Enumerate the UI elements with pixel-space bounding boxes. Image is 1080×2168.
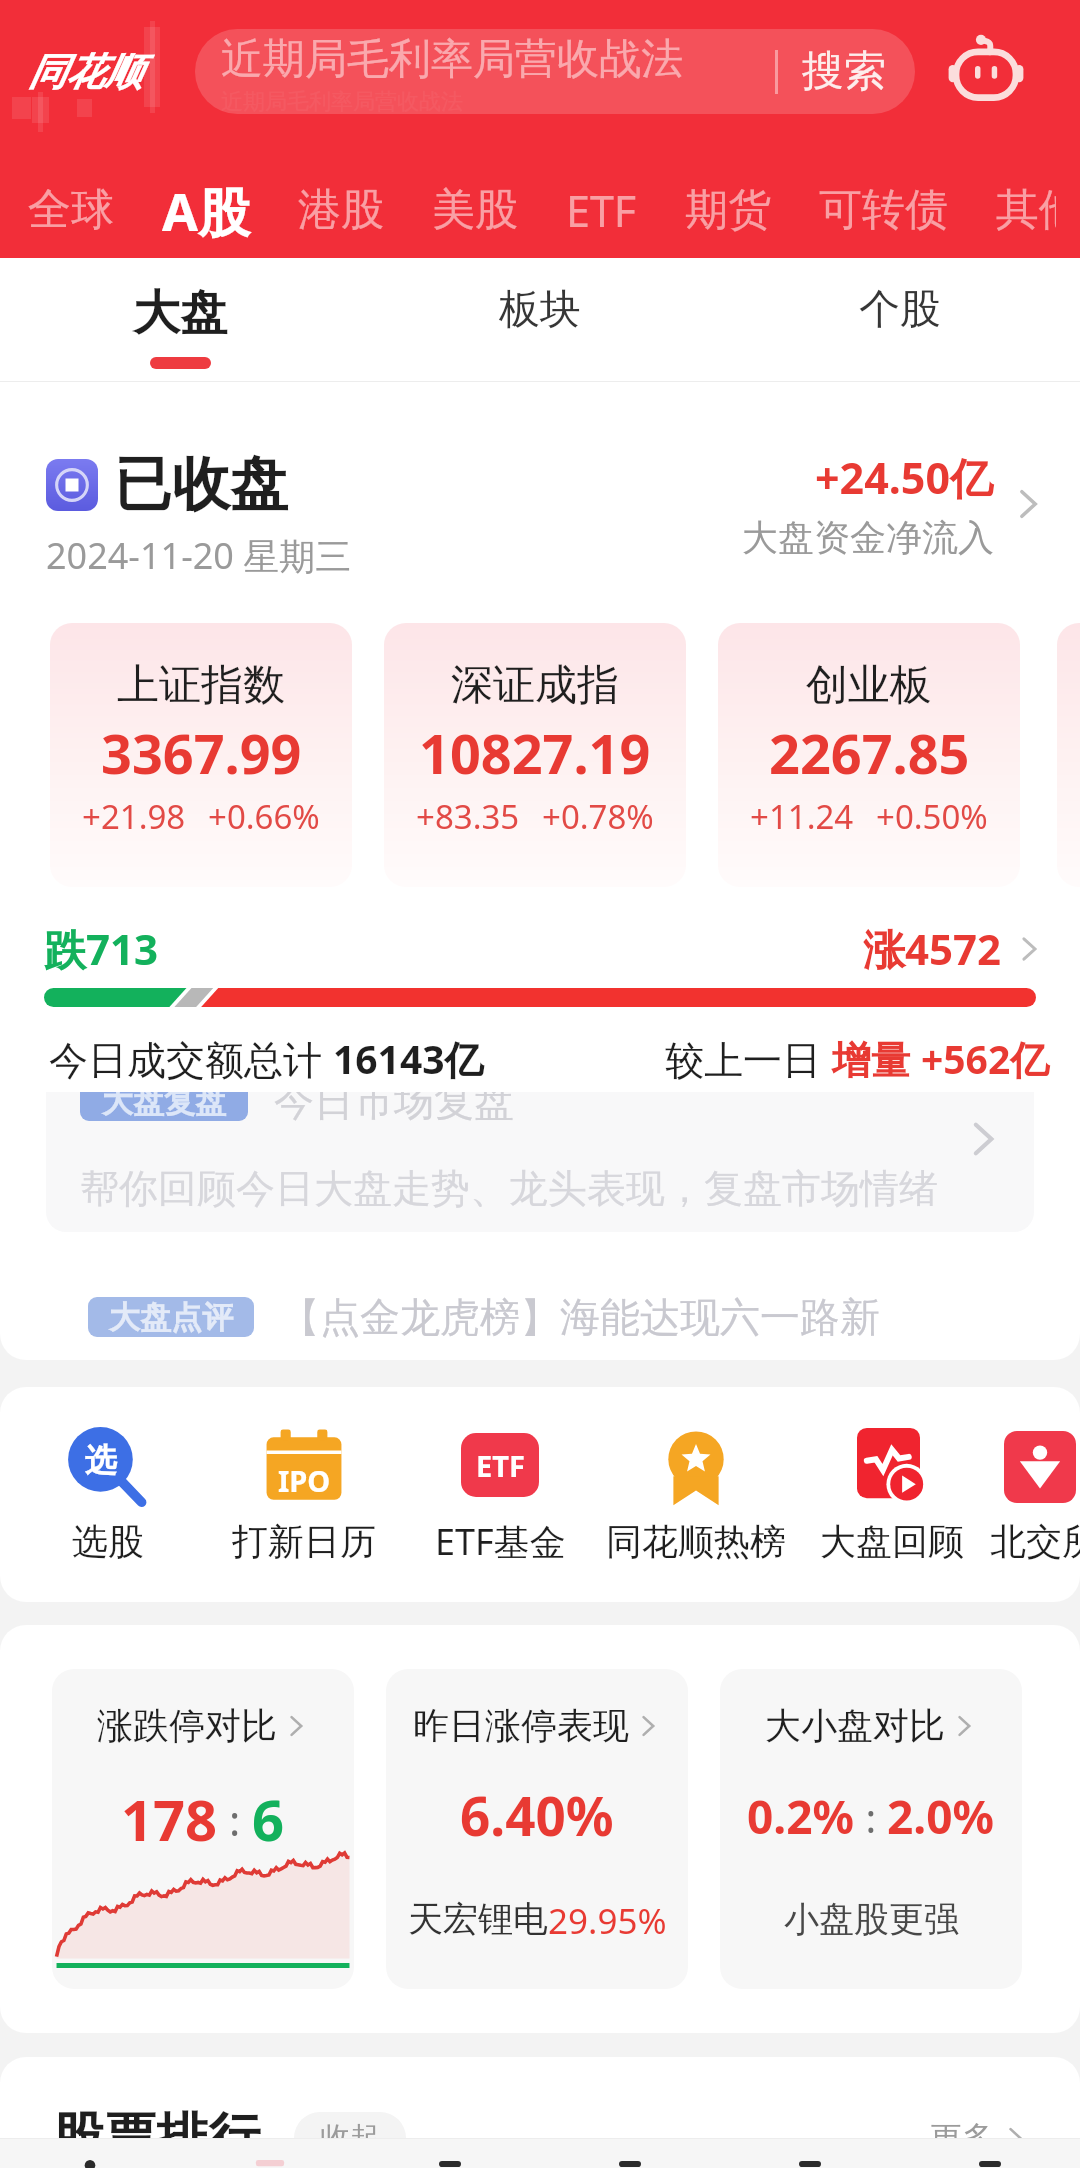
staticText: 2267.85	[769, 716, 970, 790]
staticText: 已收盘	[114, 448, 288, 521]
staticText: 大盘点评	[109, 1298, 233, 1337]
button[interactable]: 收起	[294, 2112, 406, 2138]
staticText: 今日成交额总计	[49, 1032, 333, 1085]
staticText: 【点金龙虎榜】海能达现六一路新	[280, 1292, 880, 1342]
staticText: 板块	[499, 284, 581, 336]
staticText: 2024-11-20 星期三	[46, 531, 352, 580]
staticText: +21.98	[82, 794, 186, 839]
staticText: 29.95%	[548, 1897, 667, 1945]
staticText: 选	[85, 1440, 117, 1480]
staticText: 深证成指	[451, 659, 619, 712]
staticText: 涨跌停对比	[97, 1703, 277, 1748]
staticText: 较上一日	[665, 1032, 832, 1085]
staticText: 大盘回顾	[820, 1519, 964, 1564]
staticText: 上证指数	[117, 659, 285, 712]
staticText: 增量	[832, 1032, 921, 1085]
staticText: 6	[252, 1781, 285, 1857]
button[interactable]	[1057, 623, 1080, 887]
staticText: 0.2%	[747, 1785, 855, 1848]
staticText: 更多	[930, 2118, 994, 2138]
staticText: 近期局毛利率局营收战法	[221, 33, 683, 86]
staticText: ETF基金	[435, 1517, 566, 1566]
button[interactable]: 自选	[180, 2160, 360, 2168]
staticText: 可转债	[819, 183, 948, 237]
staticText: 港股	[298, 183, 384, 237]
button[interactable]: 北交所	[990, 1425, 1080, 1564]
button[interactable]: 深证成指	[384, 623, 686, 887]
button[interactable]: 全球	[4, 175, 138, 245]
button[interactable]: 昨日涨停表现	[386, 1669, 688, 1989]
staticText: 16143亿	[333, 1032, 484, 1085]
staticText: 股票排行	[52, 2105, 260, 2138]
button[interactable]: 近期局毛利率局营收战法	[195, 29, 915, 114]
staticText: 大小盘对比	[765, 1703, 945, 1748]
button[interactable]: 同花顺热榜	[598, 1425, 794, 1564]
button[interactable]: 涨跌停对比	[52, 1669, 354, 1989]
staticText: 同花顺	[28, 48, 142, 96]
staticText: 天宏锂电	[408, 1897, 548, 1941]
staticText: 大盘资金净流入	[742, 515, 994, 560]
staticText: 10827.19	[419, 716, 651, 790]
button[interactable]: 创业板	[718, 623, 1020, 887]
button[interactable]: 选	[10, 1425, 206, 1564]
staticText: 搜索	[802, 45, 886, 98]
staticText: IPO	[278, 1461, 331, 1500]
button[interactable]: 期货	[661, 175, 795, 245]
button[interactable]: 美股	[408, 175, 542, 245]
staticText: 个股	[859, 284, 941, 336]
staticText: 6.40%	[460, 1779, 614, 1851]
staticText: 全球	[28, 183, 114, 237]
button[interactable]: IPO	[206, 1425, 402, 1564]
staticText: +0.50%	[876, 794, 988, 839]
staticText: ETF	[566, 181, 637, 240]
staticText: 昨日涨停表现	[413, 1703, 629, 1748]
button[interactable]: 行情	[360, 2160, 540, 2168]
staticText: A股	[162, 175, 250, 246]
staticText: 近期局毛利率局营收战法	[221, 88, 463, 114]
button[interactable]: 板块	[360, 258, 720, 382]
button[interactable]: 社区	[720, 2160, 900, 2168]
staticText: 小盘股更强	[784, 1897, 959, 1941]
button[interactable]: 交易	[540, 2160, 720, 2168]
staticText: 帮你回顾今日大盘走势、龙头表现，复盘市场情绪	[80, 1164, 938, 1213]
button[interactable]: 其他	[972, 175, 1080, 245]
staticText: 收起	[320, 2119, 380, 2138]
staticText: 178	[121, 1781, 218, 1857]
staticText: 创业板	[806, 659, 932, 712]
staticText: 期货	[685, 183, 771, 237]
button[interactable]: 港股	[274, 175, 408, 245]
staticText: 跌713	[44, 920, 159, 977]
staticText: 北交所	[990, 1519, 1080, 1564]
button[interactable]: 大盘回顾	[794, 1425, 990, 1564]
staticText: 今日市场复盘	[274, 1092, 514, 1126]
staticText: +0.66%	[208, 794, 320, 839]
staticText: +83.35	[416, 794, 520, 839]
button[interactable]: A股	[138, 167, 274, 254]
staticText: +0.78%	[542, 794, 654, 839]
staticText: +11.24	[750, 794, 854, 839]
button[interactable]: 上证指数	[50, 623, 352, 887]
button[interactable]: 大盘	[0, 258, 360, 382]
staticText: :	[218, 1791, 252, 1848]
staticText: 选股	[72, 1519, 144, 1564]
staticText: 打新日历	[232, 1519, 376, 1564]
button[interactable]: 更多	[930, 2118, 1028, 2138]
staticText: 涨4572	[863, 920, 1002, 977]
button[interactable]: 个股	[720, 258, 1080, 382]
staticText: :	[855, 1790, 887, 1844]
staticText: 3367.99	[101, 716, 302, 790]
button[interactable]: AI assistant	[942, 25, 1030, 113]
staticText: 同花顺热榜	[606, 1519, 786, 1564]
button[interactable]: 可转债	[795, 175, 972, 245]
button[interactable]: 大小盘对比	[720, 1669, 1022, 1989]
staticText: 其他	[996, 183, 1056, 237]
button[interactable]: +24.50亿	[742, 448, 1046, 560]
button[interactable]: 我的	[900, 2160, 1080, 2168]
button[interactable]: ETF	[542, 173, 661, 248]
staticText: +562亿	[921, 1032, 1050, 1085]
button[interactable]: ETF	[402, 1423, 598, 1566]
button[interactable]: 首页	[0, 2160, 180, 2168]
staticText: 2.0%	[887, 1785, 995, 1848]
staticText: 美股	[432, 183, 518, 237]
staticText: 大盘	[133, 284, 227, 343]
